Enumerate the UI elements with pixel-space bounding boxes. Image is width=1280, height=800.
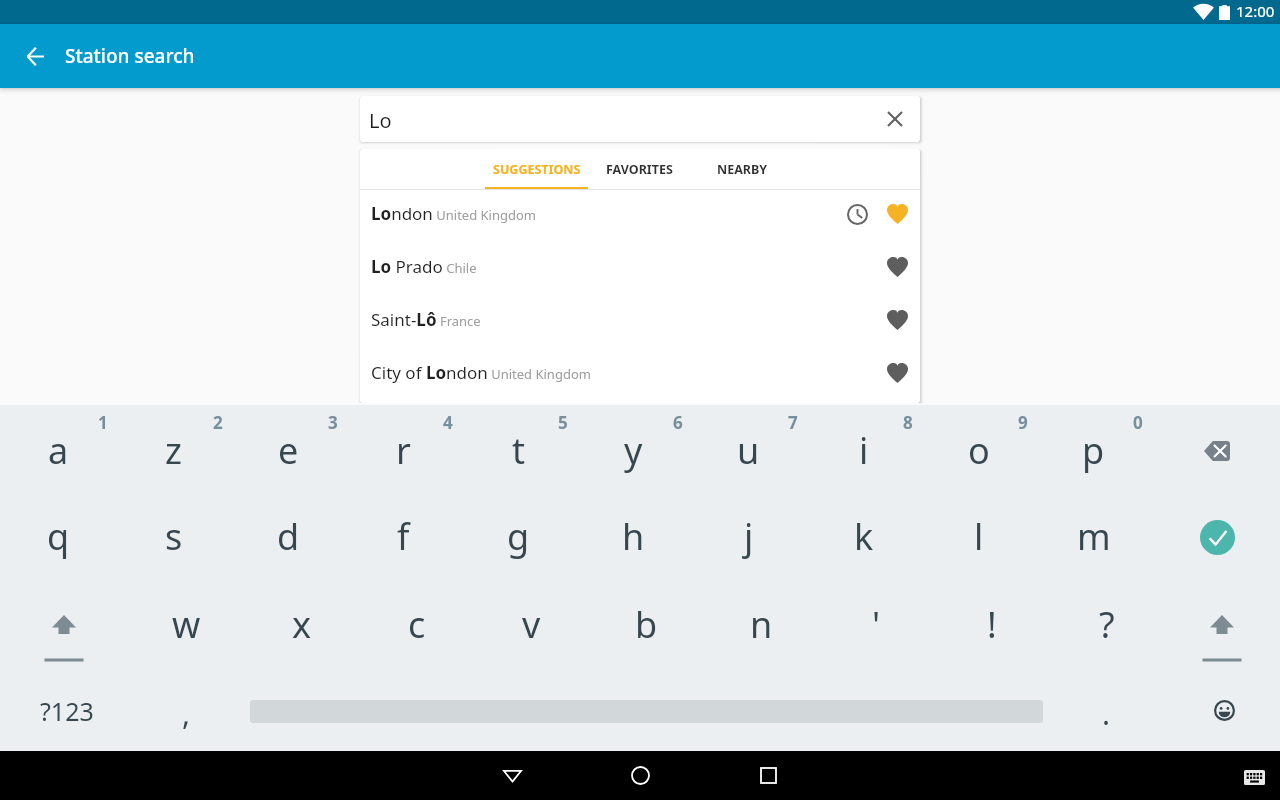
button[interactable]: j xyxy=(690,491,805,579)
staticText: Saint-Lô France xyxy=(371,308,481,331)
staticText: q xyxy=(47,512,70,561)
button[interactable]: Back xyxy=(15,36,55,76)
staticText: ! xyxy=(987,600,997,649)
button[interactable]: ' xyxy=(818,579,933,667)
button[interactable]: Home xyxy=(590,751,690,800)
button[interactable]: Clear xyxy=(875,99,915,139)
staticText: 3 xyxy=(328,411,338,434)
button[interactable]: l xyxy=(920,491,1035,579)
staticText: s xyxy=(165,512,183,561)
staticText: 7 xyxy=(788,411,798,434)
button[interactable]: c xyxy=(358,579,473,667)
button[interactable]: Backspace xyxy=(1150,405,1280,491)
staticText: f xyxy=(397,512,410,561)
button[interactable]: Favorite xyxy=(877,353,917,393)
button[interactable]: , xyxy=(128,667,250,749)
button[interactable]: Lo Prado Chile xyxy=(360,243,920,296)
staticText: u xyxy=(737,426,760,475)
button[interactable]: Switch keyboard xyxy=(1234,756,1274,796)
staticText: FAVORITES xyxy=(606,161,673,178)
staticText: m xyxy=(1077,512,1111,561)
button[interactable]: y xyxy=(575,405,690,491)
button[interactable]: w xyxy=(128,579,243,667)
staticText: k xyxy=(854,512,874,561)
staticText: NEARBY xyxy=(717,161,768,178)
staticText: . xyxy=(1102,693,1111,734)
button[interactable]: g xyxy=(460,491,575,579)
staticText: , xyxy=(182,693,191,734)
staticText: 2 xyxy=(213,411,223,434)
button[interactable]: SUGGESTIONS xyxy=(485,149,588,190)
button[interactable]: Favorite xyxy=(877,247,917,287)
button[interactable]: i xyxy=(805,405,920,491)
staticText: 9 xyxy=(1018,411,1028,434)
button[interactable]: r xyxy=(345,405,460,491)
staticText: b xyxy=(635,600,658,649)
button[interactable]: Recent xyxy=(837,194,877,234)
button[interactable]: a xyxy=(0,405,115,491)
button[interactable]: p xyxy=(1035,405,1150,491)
button[interactable]: Saint-Lô France xyxy=(360,296,920,349)
button[interactable]: Favorite xyxy=(877,300,917,340)
button[interactable]: Enter xyxy=(1150,491,1280,579)
button[interactable]: b xyxy=(588,579,703,667)
button[interactable]: o xyxy=(920,405,1035,491)
button[interactable]: Recents xyxy=(718,751,818,800)
button[interactable]: ? xyxy=(1048,579,1163,667)
button[interactable]: k xyxy=(805,491,920,579)
button[interactable]: t xyxy=(460,405,575,491)
button[interactable]: e xyxy=(230,405,345,491)
staticText: w xyxy=(172,600,201,649)
button[interactable]: City of London United Kingdom xyxy=(360,349,920,402)
button[interactable]: f xyxy=(345,491,460,579)
staticText: 8 xyxy=(903,411,913,434)
button[interactable]: Shift xyxy=(1163,579,1280,667)
button[interactable]: s xyxy=(115,491,230,579)
button[interactable]: h xyxy=(575,491,690,579)
button[interactable]: Lo xyxy=(360,96,920,142)
button[interactable]: Space xyxy=(250,667,1043,749)
staticText: 12:00 xyxy=(1236,1,1275,21)
staticText: c xyxy=(408,600,426,649)
staticText: i xyxy=(859,426,869,475)
button[interactable]: . xyxy=(1043,667,1165,749)
button[interactable]: m xyxy=(1035,491,1150,579)
staticText: ?123 xyxy=(40,694,94,728)
staticText: 6 xyxy=(673,411,683,434)
staticText: 1 xyxy=(98,411,108,434)
staticText: h xyxy=(622,512,645,561)
staticText: p xyxy=(1082,426,1105,475)
button[interactable]: z xyxy=(115,405,230,491)
staticText: 4 xyxy=(443,411,453,434)
button[interactable]: London United Kingdom xyxy=(360,190,920,243)
button[interactable]: FAVORITES xyxy=(588,149,691,190)
staticText: x xyxy=(292,600,312,649)
button[interactable]: q xyxy=(0,491,115,579)
staticText: ? xyxy=(1099,600,1115,649)
staticText: ' xyxy=(872,600,881,649)
staticText: r xyxy=(396,426,411,475)
button[interactable]: ?123 xyxy=(0,667,128,749)
staticText: e xyxy=(278,426,299,475)
button[interactable]: Shift xyxy=(0,579,128,667)
button[interactable]: NEARBY xyxy=(691,149,794,190)
button[interactable]: x xyxy=(243,579,358,667)
button[interactable]: u xyxy=(690,405,805,491)
button[interactable]: d xyxy=(230,491,345,579)
staticText: l xyxy=(974,512,984,561)
staticText: n xyxy=(750,600,773,649)
button[interactable]: n xyxy=(703,579,818,667)
staticText: d xyxy=(277,512,300,561)
staticText: Lo Prado Chile xyxy=(371,255,477,278)
staticText: o xyxy=(968,426,990,475)
staticText: t xyxy=(512,426,525,475)
staticText: y xyxy=(624,426,643,475)
button[interactable]: Favorite xyxy=(877,194,917,234)
staticText: 5 xyxy=(558,411,568,434)
button[interactable]: ! xyxy=(933,579,1048,667)
staticText: 0 xyxy=(1133,411,1143,434)
button[interactable]: Emoji xyxy=(1165,667,1280,749)
button[interactable]: Hide keyboard xyxy=(462,751,562,800)
button[interactable]: v xyxy=(473,579,588,667)
staticText: z xyxy=(165,426,182,475)
